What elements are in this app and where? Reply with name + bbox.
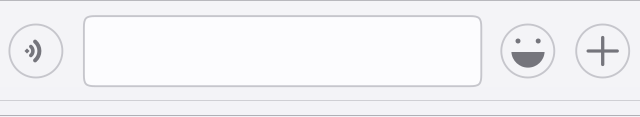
button[interactable]: Stickers: [501, 24, 554, 77]
button[interactable]: More: [576, 24, 629, 77]
button[interactable]: Message: [84, 16, 481, 86]
button[interactable]: Audio message: [9, 24, 62, 77]
